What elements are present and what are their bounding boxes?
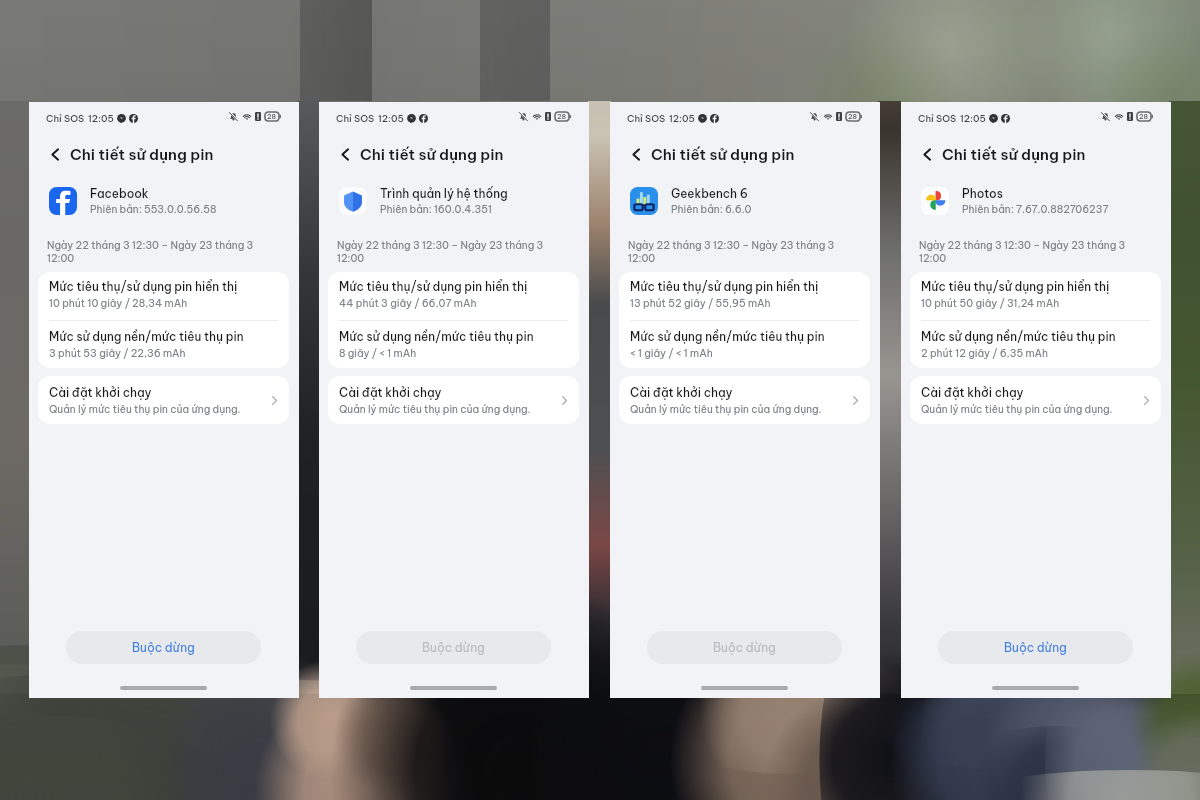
staticText: 10 phút 50 giây / 31,24 mAh [921, 297, 1060, 310]
staticText: Chỉ SOS [46, 112, 85, 124]
staticText: 3 phút 53 giây / 22,36 mAh [49, 347, 186, 360]
button[interactable]: Mức tiêu thụ/sử dụng pin hiển thị [328, 272, 579, 320]
button[interactable]: Buộc dừng [66, 631, 261, 664]
staticText: Mức sử dụng nền/mức tiêu thụ pin [630, 329, 825, 344]
staticText: Phiên bản: 553.0.0.56.58 [90, 203, 217, 216]
button[interactable]: Back [335, 144, 355, 164]
staticText: Ngày 22 tháng 3 12:30 – Ngày 23 tháng 3 … [628, 239, 842, 265]
staticText: Photos [962, 186, 1003, 201]
staticText: Quản lý mức tiêu thụ pin của ứng dụng. [339, 403, 531, 416]
button[interactable]: Mức sử dụng nền/mức tiêu thụ pin [910, 321, 1161, 368]
button[interactable]: Mức tiêu thụ/sử dụng pin hiển thị [619, 272, 870, 320]
staticText: 12:05 [88, 112, 114, 124]
staticText: Mức tiêu thụ/sử dụng pin hiển thị [921, 279, 1110, 294]
staticText: Chỉ SOS [336, 112, 375, 124]
staticText: Geekbench 6 [671, 186, 748, 201]
staticText: 28 [557, 112, 567, 121]
button[interactable]: Back [917, 144, 937, 164]
staticText: Buộc dừng [132, 640, 195, 655]
staticText: Cài đặt khởi chạy [630, 385, 733, 400]
button[interactable]: Cài đặt khởi chạy [910, 376, 1161, 424]
button[interactable]: Buộc dừng [938, 631, 1133, 664]
staticText: Quản lý mức tiêu thụ pin của ứng dụng. [630, 403, 822, 416]
staticText: Mức tiêu thụ/sử dụng pin hiển thị [339, 279, 528, 294]
staticText: Chi tiết sử dụng pin [70, 145, 214, 164]
button[interactable]: Mức sử dụng nền/mức tiêu thụ pin [619, 321, 870, 368]
staticText: Phiên bản: 6.6.0 [671, 203, 752, 216]
staticText: 2 phút 12 giây / 6,35 mAh [921, 347, 1049, 360]
staticText: 12:05 [669, 112, 695, 124]
staticText: Chi tiết sử dụng pin [942, 145, 1086, 164]
staticText: Chi tiết sử dụng pin [360, 145, 504, 164]
staticText: Chỉ SOS [627, 112, 666, 124]
staticText: Mức sử dụng nền/mức tiêu thụ pin [921, 329, 1116, 344]
staticText: Ngày 22 tháng 3 12:30 – Ngày 23 tháng 3 … [47, 239, 261, 265]
button[interactable]: Cài đặt khởi chạy [328, 376, 579, 424]
button[interactable]: Mức tiêu thụ/sử dụng pin hiển thị [910, 272, 1161, 320]
staticText: 28 [848, 112, 858, 121]
button[interactable]: Buộc dừng [647, 631, 842, 664]
button[interactable]: Mức sử dụng nền/mức tiêu thụ pin [328, 321, 579, 368]
staticText: Quản lý mức tiêu thụ pin của ứng dụng. [49, 403, 241, 416]
button[interactable]: Cài đặt khởi chạy [619, 376, 870, 424]
button[interactable]: Back [626, 144, 646, 164]
staticText: Mức tiêu thụ/sử dụng pin hiển thị [630, 279, 819, 294]
staticText: Buộc dừng [422, 640, 485, 655]
staticText: 8 giây / < 1 mAh [339, 347, 417, 360]
staticText: 12:05 [960, 112, 986, 124]
staticText: Mức sử dụng nền/mức tiêu thụ pin [49, 329, 244, 344]
staticText: Cài đặt khởi chạy [49, 385, 152, 400]
staticText: Phiên bản: 7.67.0.882706237 [962, 203, 1109, 216]
staticText: Chỉ SOS [918, 112, 957, 124]
staticText: 28 [1139, 112, 1149, 121]
button[interactable]: Mức sử dụng nền/mức tiêu thụ pin [38, 321, 289, 368]
staticText: 13 phút 52 giây / 55,95 mAh [630, 297, 771, 310]
staticText: Cài đặt khởi chạy [339, 385, 442, 400]
staticText: Mức sử dụng nền/mức tiêu thụ pin [339, 329, 534, 344]
staticText: Buộc dừng [1004, 640, 1067, 655]
staticText: Facebook [90, 186, 149, 201]
button[interactable]: Buộc dừng [356, 631, 551, 664]
staticText: Ngày 22 tháng 3 12:30 – Ngày 23 tháng 3 … [919, 239, 1133, 265]
staticText: Ngày 22 tháng 3 12:30 – Ngày 23 tháng 3 … [337, 239, 551, 265]
staticText: < 1 giây / < 1 mAh [630, 347, 713, 360]
staticText: Quản lý mức tiêu thụ pin của ứng dụng. [921, 403, 1113, 416]
staticText: Trình quản lý hệ thống [380, 186, 508, 201]
staticText: 28 [267, 112, 277, 121]
staticText: 10 phút 10 giây / 28,34 mAh [49, 297, 188, 310]
staticText: Buộc dừng [713, 640, 776, 655]
staticText: Mức tiêu thụ/sử dụng pin hiển thị [49, 279, 238, 294]
button[interactable]: Mức tiêu thụ/sử dụng pin hiển thị [38, 272, 289, 320]
staticText: Phiên bản: 160.0.4.351 [380, 203, 492, 216]
staticText: 44 phút 3 giây / 66,07 mAh [339, 297, 477, 310]
staticText: 12:05 [378, 112, 404, 124]
button[interactable]: Cài đặt khởi chạy [38, 376, 289, 424]
button[interactable]: Back [45, 144, 65, 164]
staticText: Chi tiết sử dụng pin [651, 145, 795, 164]
staticText: Cài đặt khởi chạy [921, 385, 1024, 400]
